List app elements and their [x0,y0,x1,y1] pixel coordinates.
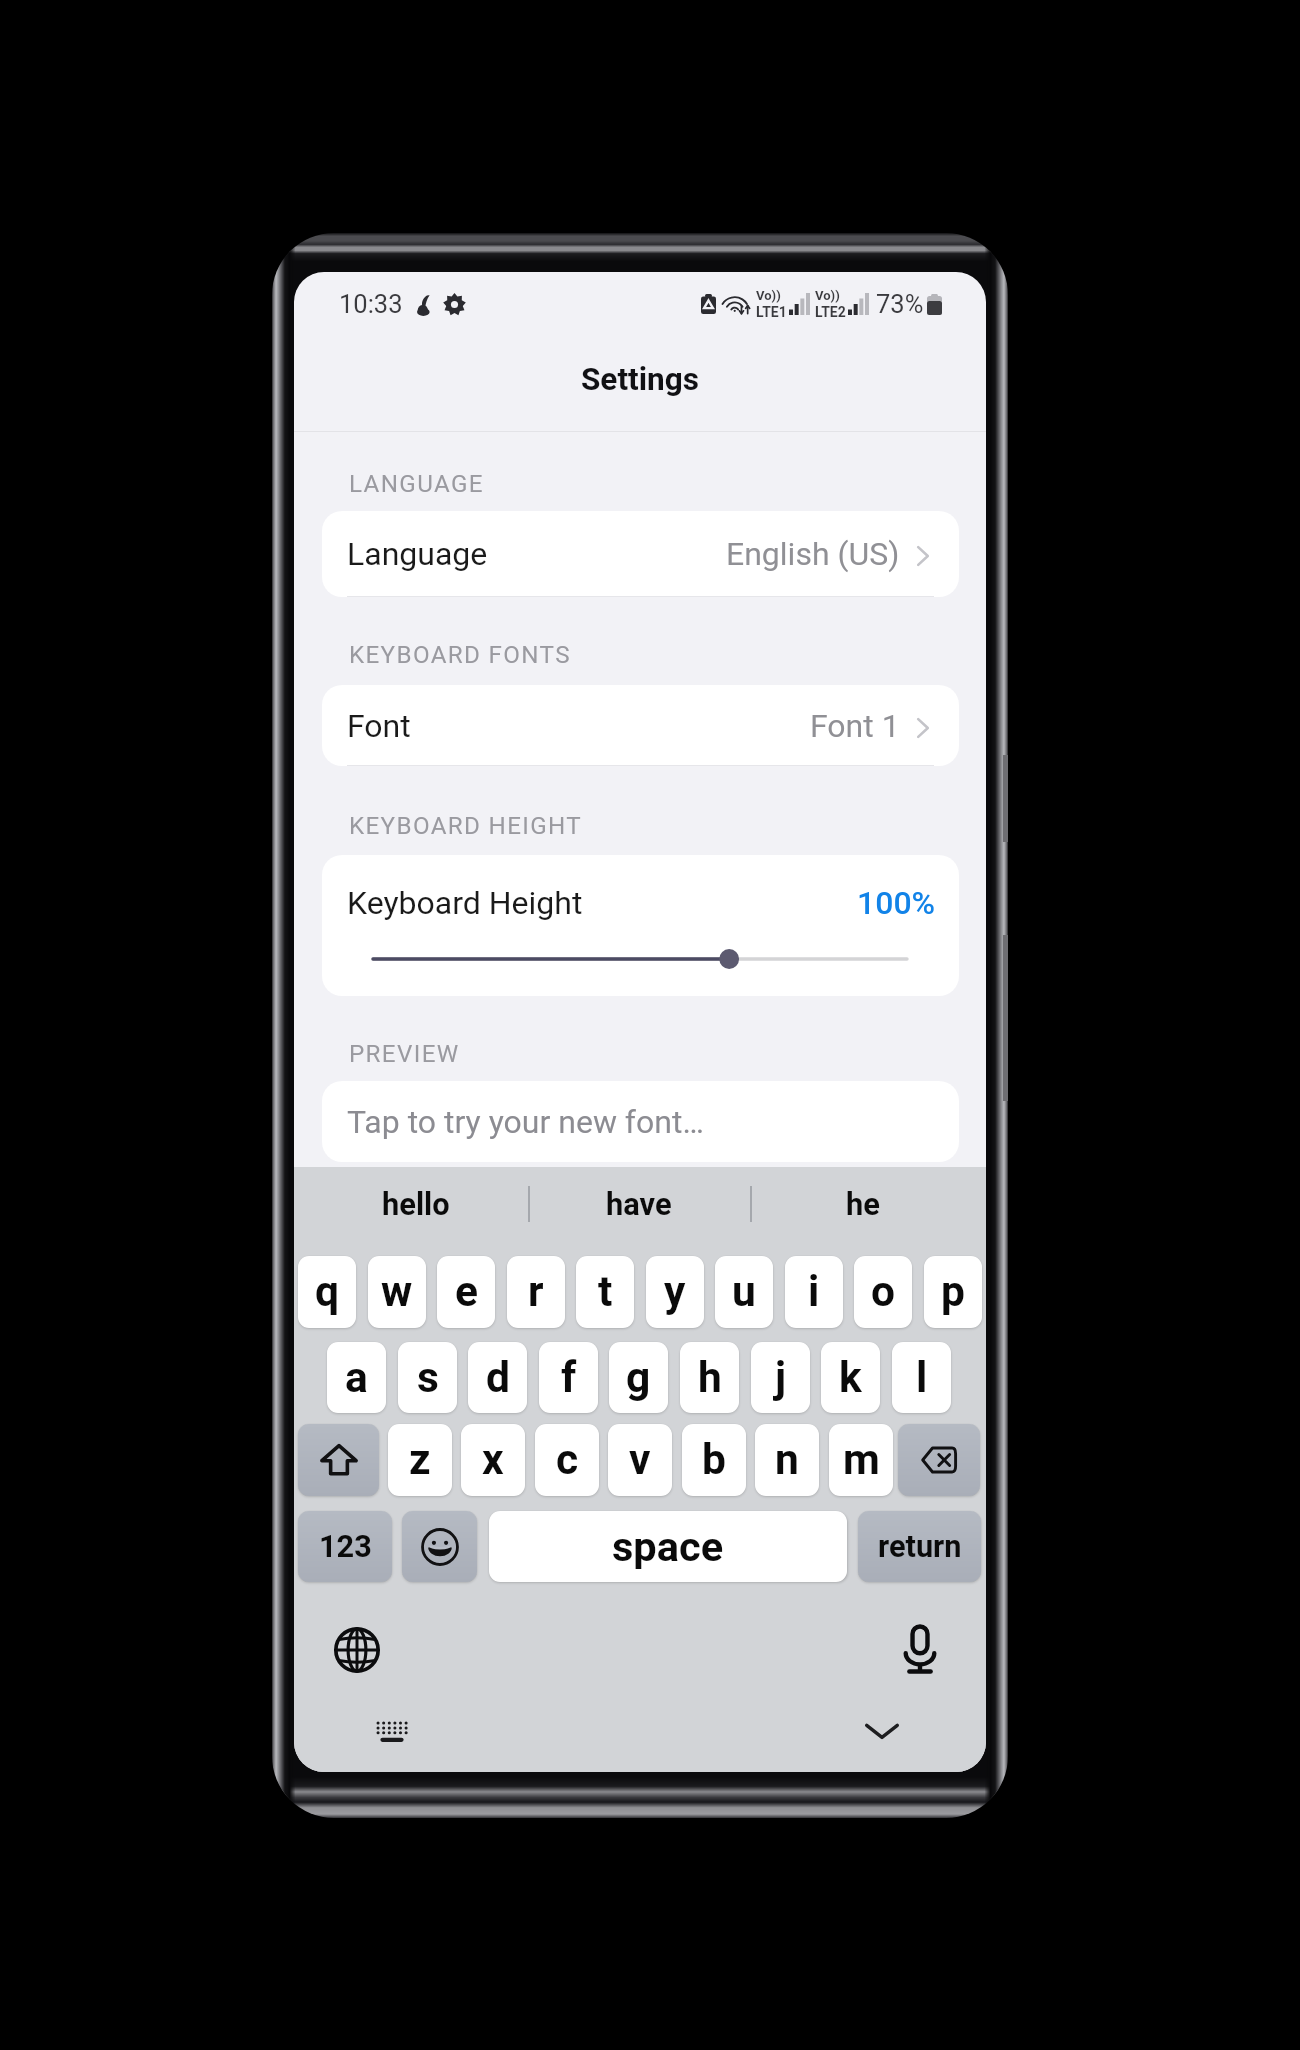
button[interactable]: n [755,1424,819,1496]
button[interactable]: he [773,1175,953,1233]
button[interactable]: t [576,1256,634,1328]
staticText: have [606,1186,672,1222]
button[interactable]: b [682,1424,746,1496]
staticText: q [315,1267,340,1317]
staticText: w [381,1267,413,1317]
staticText: LTE1 [756,304,787,320]
button[interactable]: Hide keyboard [858,1707,906,1755]
staticText: c [556,1435,579,1485]
staticText: space [612,1522,724,1571]
button[interactable]: x [461,1424,525,1496]
staticText: b [702,1435,726,1485]
staticText: m [843,1435,880,1485]
staticText: Vo)) [756,288,781,303]
button[interactable]: m [829,1424,893,1496]
staticText: 100% [857,884,936,922]
button[interactable]: s [398,1342,457,1413]
button[interactable]: 123 [298,1511,392,1582]
button[interactable]: Tap to try your new font… [322,1081,959,1162]
button[interactable]: Shift [298,1424,379,1496]
button[interactable]: h [680,1342,739,1413]
staticText: f [561,1353,577,1403]
staticText: Font 1 [810,707,900,745]
staticText: Vo)) [815,288,840,303]
staticText: Language [347,535,488,573]
staticText: n [775,1435,799,1485]
button[interactable]: Voice input [892,1621,948,1677]
staticText: return [878,1529,962,1565]
staticText: 10:33 [339,289,403,319]
staticText: t [598,1267,613,1317]
button[interactable]: y [646,1256,704,1328]
staticText: l [916,1353,928,1403]
staticText: Font [347,707,411,745]
button[interactable]: Emoji [402,1511,477,1582]
staticText: r [528,1267,544,1317]
staticText: d [486,1353,510,1403]
staticText: h [698,1353,722,1403]
button[interactable]: j [751,1342,810,1413]
staticText: z [409,1435,431,1485]
staticText: LANGUAGE [349,470,484,498]
staticText: he [846,1186,880,1222]
staticText: a [345,1353,368,1403]
staticText: u [732,1267,756,1317]
staticText: 73% [876,289,924,319]
staticText: k [839,1353,862,1403]
button[interactable]: r [507,1256,565,1328]
button[interactable]: o [854,1256,912,1328]
staticText: v [629,1435,651,1485]
button[interactable]: Font [322,685,959,766]
staticText: Keyboard Height [347,884,583,922]
button[interactable]: Keyboard layout [368,1707,416,1755]
button[interactable]: hello [326,1175,506,1233]
staticText: e [455,1267,478,1317]
staticText: o [871,1267,896,1317]
button[interactable]: z [388,1424,452,1496]
staticText: KEYBOARD FONTS [349,641,571,669]
staticText: Settings [581,361,699,398]
staticText: i [808,1267,820,1317]
button[interactable]: u [715,1256,773,1328]
button[interactable]: w [368,1256,426,1328]
button[interactable]: k [821,1342,880,1413]
button[interactable]: p [924,1256,982,1328]
staticText: Tap to try your new font… [347,1103,704,1141]
staticText: s [417,1353,439,1403]
button[interactable]: g [609,1342,668,1413]
staticText: KEYBOARD HEIGHT [349,812,583,840]
button[interactable]: i [785,1256,843,1328]
button[interactable]: Language [322,511,959,597]
staticText: p [941,1267,965,1317]
staticText: PREVIEW [349,1040,460,1068]
button[interactable]: f [539,1342,598,1413]
staticText: x [482,1435,504,1485]
button[interactable]: return [858,1511,981,1582]
staticText: 123 [319,1529,372,1565]
button[interactable]: Change language [329,1622,385,1678]
button[interactable]: l [892,1342,951,1413]
button[interactable]: q [298,1256,356,1328]
staticText: hello [382,1186,450,1222]
staticText: j [775,1353,787,1403]
button[interactable]: a [327,1342,386,1413]
button[interactable]: d [468,1342,527,1413]
button[interactable]: space [489,1511,847,1582]
button[interactable]: Keyboard Height [322,855,959,996]
staticText: g [626,1353,651,1403]
staticText: English (US) [726,535,900,573]
staticText: LTE2 [815,304,846,320]
button[interactable]: e [437,1256,495,1328]
button[interactable]: c [535,1424,599,1496]
staticText: y [664,1267,686,1317]
button[interactable]: v [608,1424,672,1496]
button[interactable]: have [549,1175,729,1233]
button[interactable]: Backspace [898,1424,980,1496]
